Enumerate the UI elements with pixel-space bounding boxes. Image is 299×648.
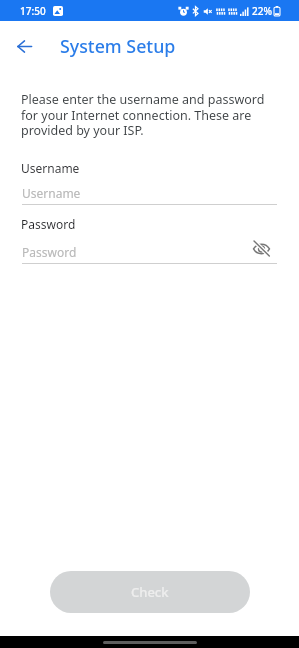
staticText: Username: [22, 185, 81, 201]
staticText: 17:50: [20, 4, 46, 18]
staticText: 22%: [252, 4, 272, 18]
staticText: Username: [21, 160, 80, 176]
button[interactable]: Password: [22, 244, 277, 264]
staticText: Please enter the username and password f…: [21, 91, 275, 138]
staticText: System Setup: [60, 34, 176, 58]
button[interactable]: Check: [50, 571, 250, 613]
button[interactable]: Username: [22, 185, 277, 205]
button[interactable]: Show password: [250, 240, 272, 256]
staticText: Password: [22, 244, 77, 260]
button[interactable]: Back: [10, 32, 38, 60]
staticText: Check: [131, 583, 169, 601]
staticText: Password: [21, 216, 76, 232]
